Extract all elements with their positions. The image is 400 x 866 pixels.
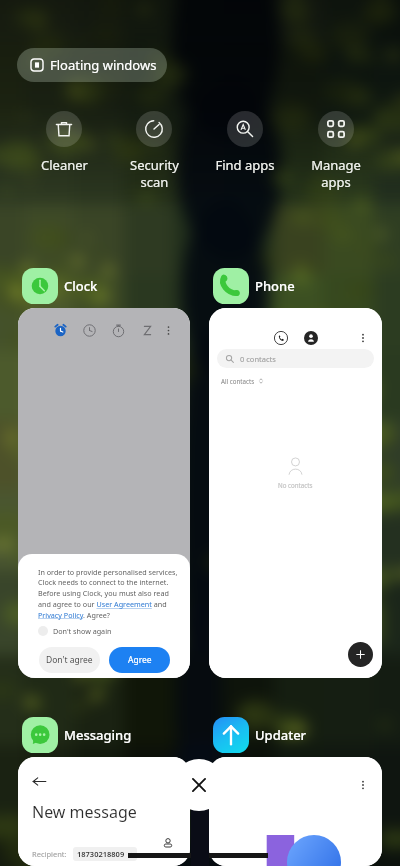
staticText: New message [32, 801, 137, 823]
staticText: Recipient: [32, 849, 67, 859]
button[interactable]: Cleaner [19, 111, 109, 174]
button[interactable]: Dialer [209, 308, 382, 678]
button[interactable] [112, 324, 125, 337]
button[interactable]: Pick contact [163, 838, 173, 848]
button[interactable]: Don't agree [39, 647, 100, 673]
staticText: Updater [255, 726, 307, 744]
button[interactable]: Find apps [199, 111, 290, 174]
button[interactable]: Add contact [348, 642, 373, 667]
staticText: Don't show again [53, 626, 112, 636]
button[interactable] [83, 324, 96, 337]
staticText: Phone [255, 277, 295, 295]
button[interactable]: More options [18, 308, 190, 678]
button[interactable]: Back [32, 774, 47, 789]
staticText: Security scan [130, 156, 179, 191]
staticText: In order to provide personalised service… [38, 567, 178, 620]
button[interactable] [54, 324, 67, 337]
staticText: Floating windows [50, 56, 157, 74]
button[interactable]: Agree [109, 647, 170, 673]
button[interactable]: More options [162, 324, 175, 337]
button[interactable]: Close all [173, 759, 225, 811]
button[interactable]: Manage apps [290, 111, 381, 191]
button[interactable]: All contacts [221, 377, 264, 385]
button[interactable]: More options [357, 779, 369, 791]
staticText: Clock [64, 277, 98, 295]
staticText: 18730218809 × [77, 849, 133, 859]
button[interactable]: Security scan [109, 111, 199, 191]
button[interactable]: Don't show again [38, 626, 112, 636]
button[interactable]: 0 contacts [217, 349, 374, 368]
staticText: Find apps [215, 156, 275, 174]
staticText: All contacts [221, 377, 255, 385]
staticText: Manage apps [311, 156, 361, 191]
button[interactable]: More options [357, 332, 369, 344]
button[interactable] [141, 324, 154, 337]
staticText: Cleaner [41, 156, 88, 174]
button[interactable]: Floating windows [17, 48, 167, 82]
staticText: 0 contacts [240, 354, 276, 364]
button[interactable]: More options [209, 757, 382, 866]
staticText: No contacts [278, 481, 313, 489]
staticText: Agree [128, 654, 152, 666]
button[interactable]: 18730218809 × [73, 847, 137, 861]
staticText: Don't agree [46, 654, 93, 666]
button[interactable]: Contacts [304, 331, 318, 345]
button[interactable]: Back [18, 757, 190, 866]
staticText: Messaging [64, 726, 132, 744]
button[interactable]: Dialer [274, 331, 288, 345]
